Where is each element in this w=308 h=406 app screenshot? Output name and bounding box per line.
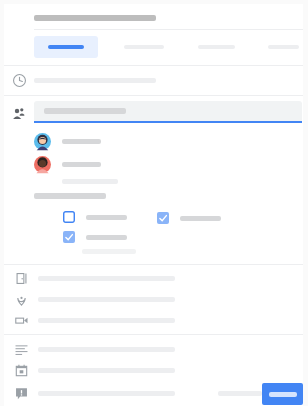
button[interactable] [34,130,302,153]
button[interactable]: Time [4,66,303,95]
button[interactable]: Add guests [34,101,302,121]
button[interactable] [264,41,303,53]
button[interactable]: Location [4,289,303,310]
button[interactable] [120,41,168,53]
button[interactable] [34,153,302,176]
button[interactable]: Unchecked option [60,208,78,226]
button[interactable]: Checked option [60,228,78,246]
button[interactable] [34,36,98,58]
button[interactable]: Meeting room [4,268,303,289]
button[interactable]: Notification [4,381,38,406]
button[interactable]: Save [262,383,303,405]
button[interactable]: Checked option [154,209,172,227]
button[interactable]: Calendar [4,360,303,381]
button[interactable]: Video conferencing [4,310,303,331]
button[interactable]: Description [4,339,303,360]
button[interactable] [194,41,239,53]
